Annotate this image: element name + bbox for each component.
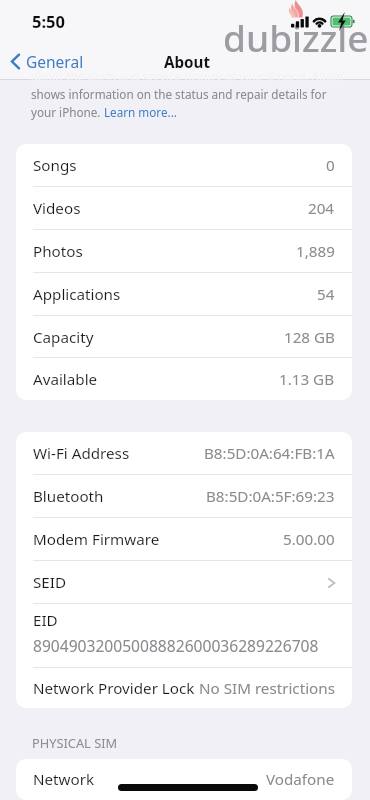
- staticText: General: [26, 51, 84, 72]
- staticText: Vodafone: [266, 769, 335, 790]
- staticText: B8:5D:0A:64:FB:1A: [204, 443, 335, 464]
- staticText: shows information on the status and repa…: [31, 86, 327, 102]
- staticText: About: [164, 52, 211, 73]
- button[interactable]: Learn more...: [104, 104, 177, 120]
- staticText: 204: [308, 198, 335, 219]
- staticText: 89049032005008882600036289226708: [33, 635, 319, 656]
- staticText: about the parts and service history of y…: [31, 68, 344, 84]
- button[interactable]: Applications: [16, 273, 352, 316]
- staticText: dubizzle: [223, 12, 369, 62]
- button[interactable]: Modem Firmware: [16, 518, 352, 561]
- button[interactable]: Bluetooth: [16, 475, 352, 518]
- button[interactable]: Network: [16, 759, 352, 800]
- staticText: 0: [326, 155, 335, 176]
- button[interactable]: Network Provider Lock: [16, 668, 352, 708]
- button[interactable]: SEID: [16, 561, 352, 604]
- button[interactable]: Capacity: [16, 316, 352, 358]
- staticText: Network Provider Lock: [33, 678, 195, 699]
- staticText: Photos: [33, 241, 83, 262]
- staticText: Songs: [33, 155, 77, 176]
- staticText: Wi-Fi Address: [33, 443, 130, 464]
- button[interactable]: Back to General: [10, 48, 84, 74]
- staticText: 5:50: [32, 10, 65, 32]
- button[interactable]: Wi-Fi Address: [16, 432, 352, 475]
- button[interactable]: Videos: [16, 187, 352, 230]
- staticText: Modem Firmware: [33, 529, 160, 550]
- button[interactable]: Photos: [16, 230, 352, 273]
- staticText: Videos: [33, 198, 81, 219]
- staticText: 54: [317, 284, 335, 305]
- staticText: No SIM restrictions: [199, 678, 335, 699]
- staticText: Network: [33, 769, 95, 790]
- button[interactable]: Available: [16, 358, 352, 400]
- staticText: your iPhone.: [31, 104, 104, 120]
- staticText: 5.00.00: [283, 529, 335, 550]
- button[interactable]: Songs: [16, 144, 352, 187]
- staticText: 128 GB: [284, 327, 335, 348]
- other: Status icons: [286, 0, 370, 32]
- staticText: Applications: [33, 284, 121, 305]
- staticText: SEID: [33, 572, 67, 593]
- button[interactable]: EID: [16, 604, 352, 668]
- staticText: Available: [33, 369, 98, 390]
- staticText: 1.13 GB: [279, 369, 335, 390]
- staticText: Bluetooth: [33, 486, 104, 507]
- staticText: B8:5D:0A:5F:69:23: [206, 486, 335, 507]
- staticText: Capacity: [33, 327, 94, 348]
- staticText: 1,889: [296, 241, 335, 262]
- staticText: EID: [33, 610, 58, 631]
- staticText: PHYSICAL SIM: [32, 734, 118, 751]
